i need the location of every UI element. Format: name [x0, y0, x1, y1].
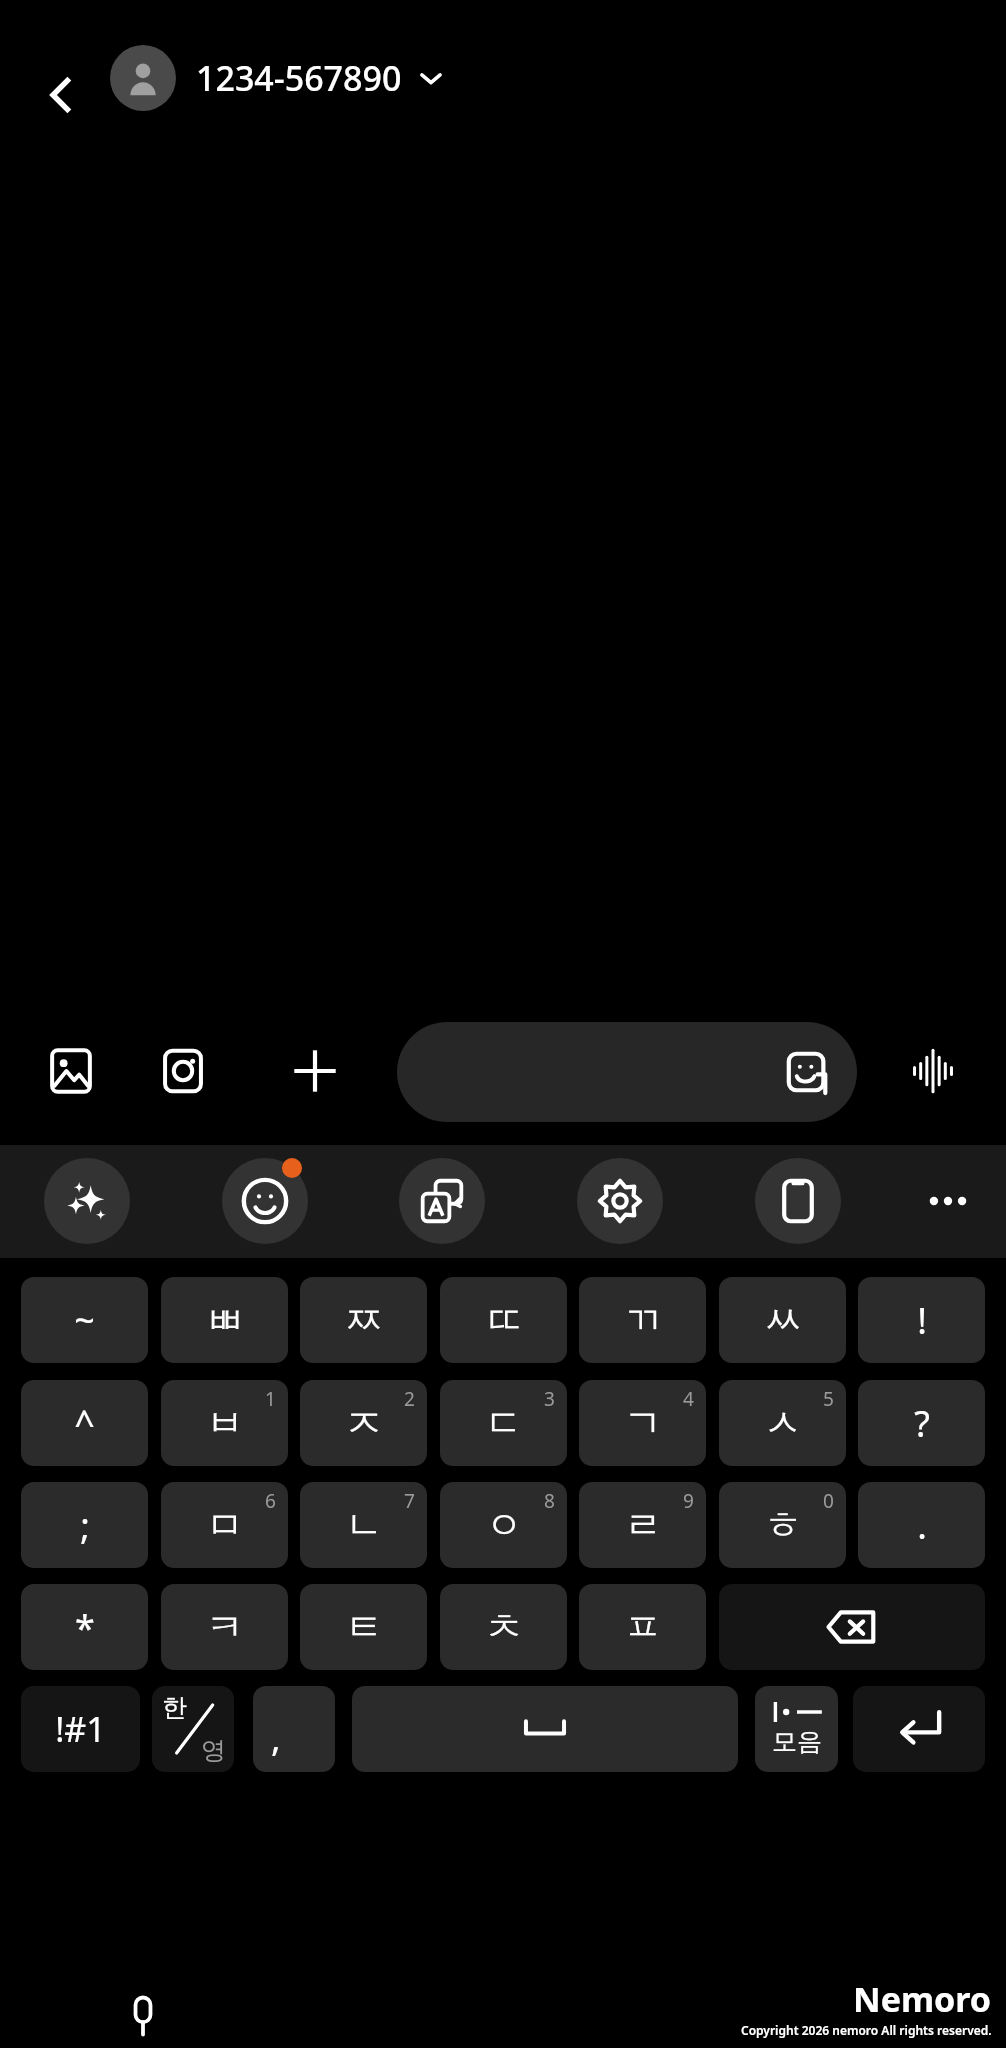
staticText: 2 [404, 1386, 415, 1412]
staticText: ^ [74, 1399, 95, 1448]
staticText: ㅊ [485, 1603, 523, 1651]
button[interactable]: ! [858, 1277, 985, 1363]
button[interactable]: Korean English toggle [152, 1686, 234, 1772]
button[interactable]: ㄴ [300, 1482, 427, 1568]
button[interactable]: ㅈ [300, 1380, 427, 1466]
button[interactable]: ㅇ [440, 1482, 567, 1568]
button[interactable]: Sticker [781, 1045, 835, 1099]
staticText: 1 [265, 1386, 276, 1412]
button[interactable]: Sticker [397, 1022, 857, 1122]
staticText: 5 [823, 1386, 834, 1412]
button[interactable]: ㄱ [579, 1380, 706, 1466]
staticText: 0 [823, 1488, 834, 1514]
button[interactable]: * [21, 1584, 148, 1670]
staticText: ㄲ [624, 1296, 662, 1344]
staticText: 1234-567890 [196, 55, 402, 101]
staticText: ㅉ [345, 1296, 383, 1344]
staticText: ㅁ [206, 1501, 244, 1549]
staticText: ㅇ [485, 1501, 523, 1549]
button[interactable]: ; [21, 1482, 148, 1568]
button[interactable]: More keyboard options [905, 1158, 991, 1244]
staticText: 8 [544, 1488, 555, 1514]
staticText: ; [80, 1501, 90, 1550]
button[interactable]: Clipboard [755, 1158, 841, 1244]
button[interactable]: ㄹ [579, 1482, 706, 1568]
button[interactable]: Back [28, 62, 94, 128]
staticText: Copyright 2026 nemoro All rights reserve… [741, 2022, 992, 2038]
staticText: 3 [544, 1386, 555, 1412]
staticText: ㄱ [624, 1399, 662, 1447]
staticText: . [917, 1501, 927, 1550]
staticText: ! [917, 1296, 927, 1345]
staticText: 7 [404, 1488, 415, 1514]
button[interactable]: Add attachment [282, 1038, 348, 1104]
staticText: ㅌ [345, 1603, 383, 1651]
button[interactable]: . [858, 1482, 985, 1568]
button[interactable]: Enter [853, 1686, 985, 1772]
button[interactable]: Voice message [900, 1038, 966, 1104]
button[interactable]: ~ [21, 1277, 148, 1363]
staticText: ㅂ [206, 1399, 244, 1447]
staticText: Nemoro [853, 1976, 992, 2022]
staticText: 모음 [772, 1726, 822, 1757]
button[interactable]: Settings [577, 1158, 663, 1244]
button[interactable]: Translate [399, 1158, 485, 1244]
button[interactable]: Vowel keys [755, 1686, 838, 1772]
staticText: ㅋ [206, 1603, 244, 1651]
staticText: ㅎ [764, 1501, 802, 1549]
staticText: ㅃ [206, 1296, 244, 1344]
staticText: 영 [201, 1735, 226, 1766]
button[interactable]: Camera [150, 1038, 216, 1104]
staticText: ㄷ [485, 1399, 523, 1447]
button[interactable]: Contact avatar [110, 45, 176, 111]
staticText: ㅈ [345, 1399, 383, 1447]
staticText: 4 [683, 1386, 694, 1412]
button[interactable]: ㅁ [161, 1482, 288, 1568]
button[interactable]: ㄲ [579, 1277, 706, 1363]
staticText: ~ [74, 1296, 95, 1345]
button[interactable]: ㅂ [161, 1380, 288, 1466]
button[interactable]: AI suggestions [44, 1158, 130, 1244]
button[interactable]: ㅌ [300, 1584, 427, 1670]
button[interactable]: ㅃ [161, 1277, 288, 1363]
button[interactable]: 1234-567890 [196, 45, 444, 111]
staticText: ㅆ [764, 1296, 802, 1344]
button[interactable]: Emoji [222, 1158, 308, 1244]
staticText: ㄹ [624, 1501, 662, 1549]
staticText: ㄴ [345, 1501, 383, 1549]
button[interactable]: , [253, 1686, 335, 1772]
button[interactable]: ㄷ [440, 1380, 567, 1466]
staticText: 9 [683, 1488, 694, 1514]
staticText: ㅍ [624, 1603, 662, 1651]
staticText: * [75, 1603, 95, 1652]
button[interactable]: !#1 [21, 1686, 140, 1772]
staticText: ㅅ [764, 1399, 802, 1447]
button[interactable]: ㅊ [440, 1584, 567, 1670]
staticText: , [271, 1713, 281, 1762]
button[interactable]: ㅋ [161, 1584, 288, 1670]
button[interactable]: Gallery [38, 1038, 104, 1104]
button[interactable]: ㅅ [719, 1380, 846, 1466]
button[interactable]: Voice input [112, 1985, 174, 2047]
staticText: ? [914, 1399, 930, 1448]
button[interactable]: ㅎ [719, 1482, 846, 1568]
button[interactable]: ? [858, 1380, 985, 1466]
button[interactable]: ㅉ [300, 1277, 427, 1363]
button[interactable]: Backspace [719, 1584, 985, 1670]
staticText: !#1 [55, 1706, 106, 1752]
staticText: 한 [162, 1692, 187, 1723]
staticText: ㄸ [485, 1296, 523, 1344]
button[interactable]: Space [352, 1686, 738, 1772]
button[interactable]: ㄸ [440, 1277, 567, 1363]
button[interactable]: ㅍ [579, 1584, 706, 1670]
staticText: 6 [265, 1488, 276, 1514]
button[interactable]: ㅆ [719, 1277, 846, 1363]
button[interactable]: ^ [21, 1380, 148, 1466]
